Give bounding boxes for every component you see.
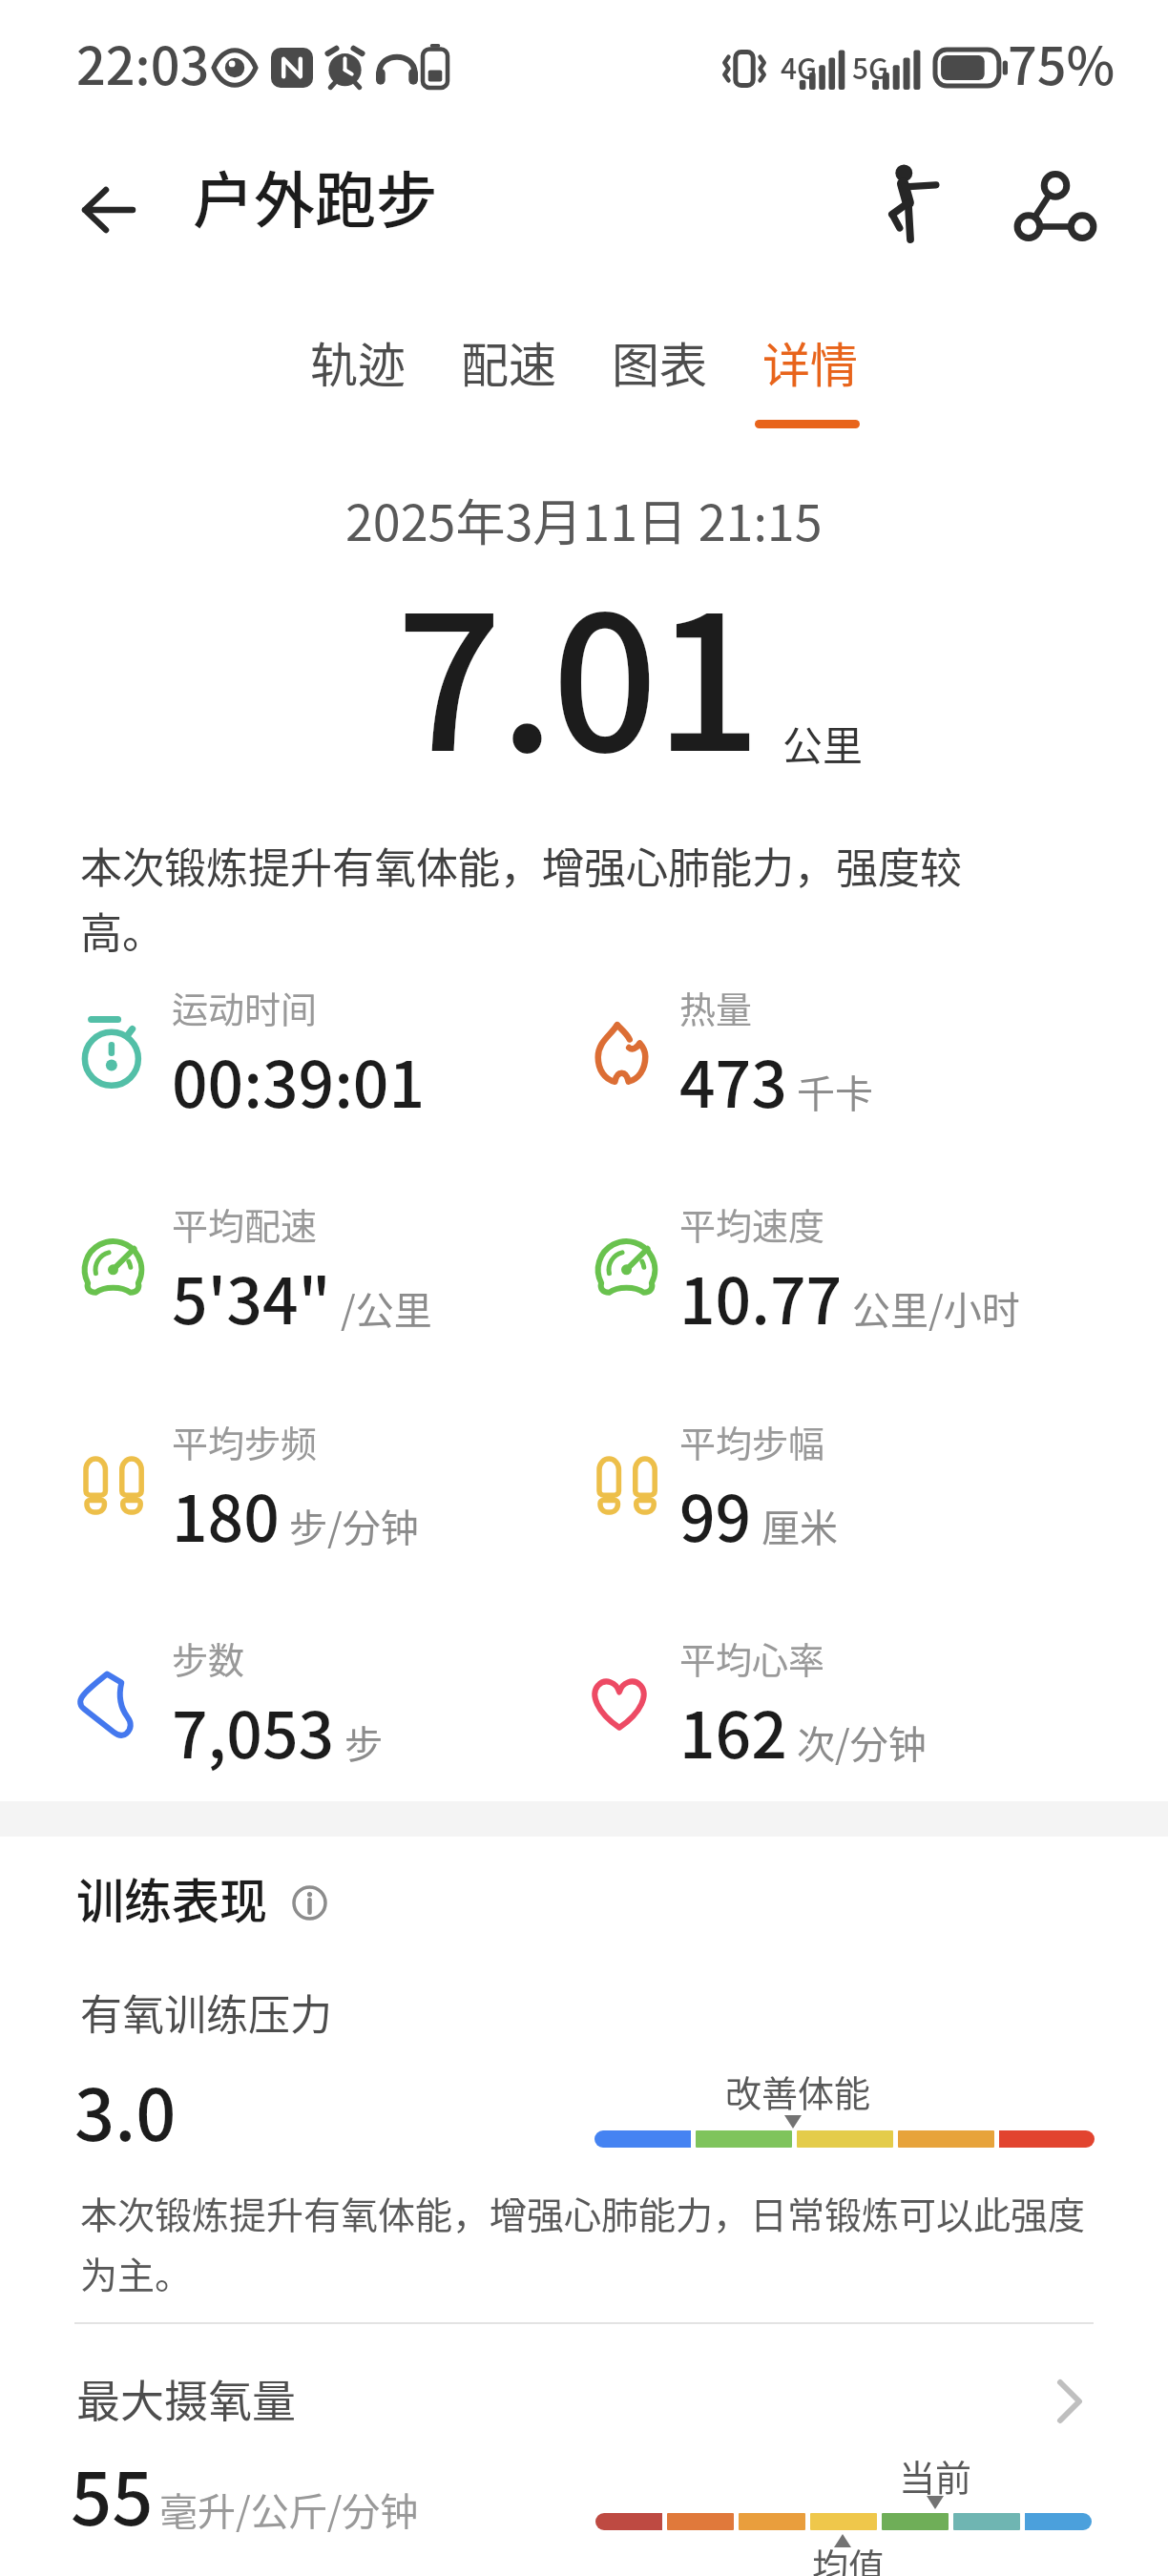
button[interactable]	[870, 160, 950, 250]
staticText: 99	[679, 1468, 752, 1560]
staticText: 公里/小时	[852, 1280, 1020, 1336]
staticText: 平均步幅	[679, 1415, 825, 1467]
staticText: 10.77	[679, 1251, 843, 1342]
staticText: 训练表现	[76, 1863, 267, 1932]
staticText: 图表	[612, 327, 707, 396]
staticText: 180	[172, 1468, 280, 1560]
staticText: 473	[679, 1034, 787, 1126]
button[interactable]	[73, 179, 145, 240]
staticText: 公里	[782, 714, 864, 772]
button[interactable]: 轨迹	[310, 327, 406, 396]
staticText: 次/分钟	[797, 1714, 927, 1770]
staticText: 有氧训练压力	[80, 1982, 332, 2043]
staticText: 改善体能	[725, 2065, 871, 2117]
staticText: 22:03	[76, 25, 210, 99]
staticText: 平均速度	[679, 1197, 825, 1250]
staticText: 配速	[461, 327, 556, 396]
staticText: 千卡	[797, 1064, 873, 1119]
staticText: 7,053	[172, 1685, 335, 1776]
staticText: 00:39:01	[172, 1034, 426, 1126]
staticText: 毫升/公斤/分钟	[159, 2482, 419, 2537]
staticText: 本次锻炼提升有氧体能，增强心肺能力，强度较 高。	[80, 835, 962, 961]
staticText: 厘米	[761, 1498, 838, 1553]
staticText: 7.01	[396, 535, 759, 804]
staticText: 轨迹	[310, 327, 406, 396]
staticText: 步	[344, 1714, 383, 1770]
staticText: 步/分钟	[289, 1498, 419, 1553]
staticText: 步数	[172, 1631, 245, 1684]
staticText: 最大摄氧量	[76, 2366, 296, 2430]
staticText: 平均配速	[172, 1197, 318, 1250]
button[interactable]: 详情	[762, 327, 858, 396]
button[interactable]	[57, 2357, 1111, 2462]
staticText: 当前	[899, 2449, 972, 2502]
staticText: 2025年3月11日 21:15	[345, 484, 823, 555]
staticText: 详情	[762, 327, 858, 396]
button[interactable]	[292, 1885, 327, 1921]
staticText: 55	[71, 2441, 154, 2546]
staticText: 平均心率	[679, 1631, 825, 1684]
staticText: 162	[679, 1685, 787, 1776]
staticText: 5G	[852, 46, 889, 87]
staticText: 4G	[781, 46, 818, 87]
button[interactable]: 配速	[461, 327, 556, 396]
staticText: 5'34"	[172, 1251, 331, 1342]
staticText: 本次锻炼提升有氧体能，增强心肺能力，日常锻炼可以此强度 为主。	[80, 2186, 1086, 2300]
staticText: /公里	[341, 1280, 432, 1336]
staticText: 运动时间	[172, 981, 318, 1033]
button[interactable]: 图表	[612, 327, 707, 396]
staticText: 75%	[1008, 25, 1116, 99]
staticText: 平均步频	[172, 1415, 318, 1467]
staticText: 均值	[812, 2538, 886, 2576]
staticText: 3.0	[74, 2059, 177, 2161]
button[interactable]	[1010, 164, 1101, 248]
staticText: 户外跑步	[193, 152, 437, 240]
staticText: 热量	[679, 981, 753, 1033]
